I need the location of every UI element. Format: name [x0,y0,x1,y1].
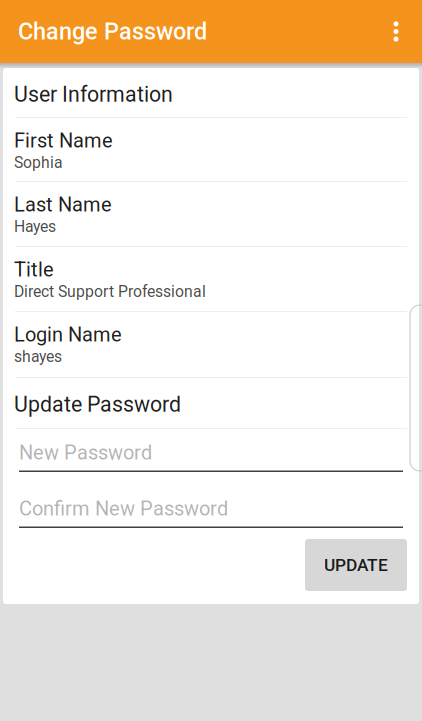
staticText: Confirm New Password [19,497,228,520]
staticText: Hayes [14,217,56,236]
staticText: First Name [14,129,113,152]
button[interactable]: Confirm New Password [3,485,419,539]
staticText: New Password [19,441,152,464]
staticText: UPDATE [324,555,388,575]
staticText: Title [14,258,54,281]
staticText: Sophia [14,153,63,172]
staticText: shayes [14,347,62,366]
button[interactable]: New Password [3,429,419,485]
staticText: User Information [14,82,173,107]
staticText: Last Name [14,193,112,216]
staticText: Change Password [18,18,207,45]
button[interactable]: More options [372,7,420,55]
staticText: Update Password [14,392,181,417]
button[interactable]: UPDATE [305,539,407,591]
staticText: Login Name [14,323,122,346]
staticText: Direct Support Professional [14,282,206,301]
